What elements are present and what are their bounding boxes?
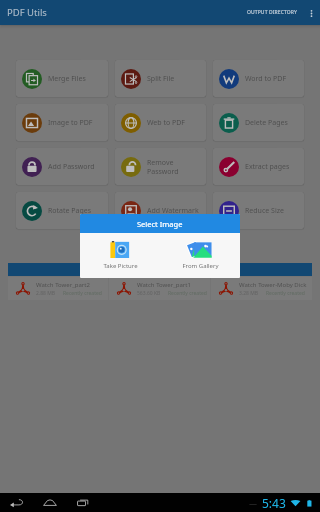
staticText: 2.88 MB bbox=[36, 290, 56, 297]
staticText: Recently created bbox=[266, 290, 305, 297]
staticText: 563.60 KB bbox=[137, 290, 161, 297]
staticText: Add Password bbox=[48, 162, 95, 172]
button[interactable]: Take Picture bbox=[80, 233, 160, 278]
button[interactable]: Watch Tower_part1 bbox=[109, 277, 210, 300]
staticText: Select Image bbox=[137, 219, 183, 229]
staticText: Rotate Pages bbox=[48, 206, 92, 216]
staticText: Watch Tower_part1 bbox=[137, 281, 191, 289]
button[interactable]: Extract pages bbox=[213, 148, 304, 185]
staticText: Recently created bbox=[63, 290, 102, 297]
button[interactable]: Remove Password bbox=[115, 148, 206, 185]
staticText: Add Watermark bbox=[147, 206, 199, 216]
button[interactable]: Reduce Size bbox=[213, 192, 304, 229]
staticText: Extract pages bbox=[245, 162, 290, 172]
staticText: PDF Utils bbox=[7, 6, 47, 19]
button[interactable]: Image to PDF bbox=[16, 104, 108, 141]
staticText: Remove Password bbox=[147, 158, 204, 176]
staticText: Split File bbox=[147, 74, 175, 84]
button[interactable]: OUTPUT DIRECTORY bbox=[243, 3, 302, 22]
staticText: Web to PDF bbox=[147, 118, 186, 128]
staticText: Watch Tower_part2 bbox=[36, 281, 90, 289]
staticText: Merge Files bbox=[48, 74, 86, 84]
button[interactable]: Split File bbox=[115, 60, 206, 97]
button[interactable]: Back bbox=[5, 493, 29, 512]
button[interactable]: Watch Tower-Moby Dick bbox=[211, 277, 312, 300]
button[interactable]: Word to PDF bbox=[213, 60, 304, 97]
button[interactable]: Web to PDF bbox=[115, 104, 206, 141]
button[interactable]: Home bbox=[38, 493, 62, 512]
button[interactable]: From Gallery bbox=[160, 233, 240, 278]
button[interactable]: Rotate Pages bbox=[16, 192, 108, 229]
button[interactable]: More options bbox=[302, 4, 320, 22]
button[interactable]: Watch Tower_part2 bbox=[8, 277, 108, 300]
button[interactable]: Delete Pages bbox=[213, 104, 304, 141]
staticText: Reduce Size bbox=[245, 206, 284, 216]
staticText: Take Picture bbox=[103, 262, 138, 270]
staticText: Word to PDF bbox=[245, 74, 287, 84]
staticText: — bbox=[249, 498, 257, 509]
staticText: OUTPUT DIRECTORY bbox=[247, 9, 298, 16]
staticText: Delete Pages bbox=[245, 118, 288, 128]
staticText: 5:43 bbox=[262, 495, 286, 511]
staticText: Watch Tower-Moby Dick bbox=[239, 281, 307, 289]
staticText: Image to PDF bbox=[48, 118, 93, 128]
staticText: Recently created bbox=[168, 290, 207, 297]
staticText: 3.28 MB bbox=[239, 290, 259, 297]
staticText: From Gallery bbox=[182, 262, 219, 270]
button[interactable]: Add Watermark bbox=[115, 192, 206, 229]
button[interactable]: Merge Files bbox=[16, 60, 108, 97]
button[interactable]: Add Password bbox=[16, 148, 108, 185]
button[interactable]: Recents bbox=[71, 493, 95, 512]
